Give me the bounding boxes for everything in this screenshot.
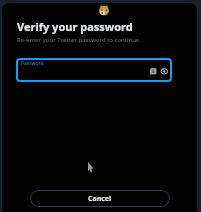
staticText: Cancel bbox=[88, 194, 112, 204]
staticText: Password bbox=[21, 60, 44, 67]
button[interactable]: Cancel bbox=[30, 190, 170, 207]
button[interactable]: Password bbox=[16, 58, 172, 82]
staticText: Re-enter your Twitter password to contin… bbox=[17, 36, 141, 44]
staticText: Verify your password bbox=[17, 19, 133, 34]
